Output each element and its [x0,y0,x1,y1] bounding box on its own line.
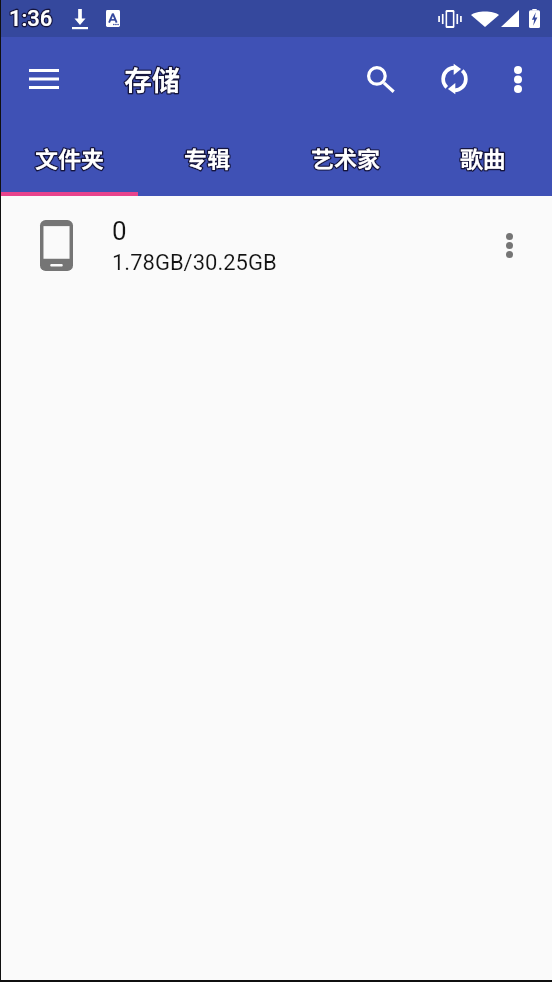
staticText: 0 [112,216,127,246]
button[interactable]: 艺术家 [276,122,414,196]
button[interactable]: 歌曲 [414,122,552,196]
staticText: 文件夹 [35,141,104,174]
staticText: 歌曲 [460,141,506,174]
button[interactable]: 文件夹 [0,122,138,196]
button[interactable]: 专辑 [138,122,276,196]
staticText: 存储 [124,59,181,100]
staticText: 1:36 [9,6,53,32]
button[interactable]: Navigation menu [15,50,73,108]
button[interactable]: Search [353,50,409,108]
staticText: 专辑 [184,141,230,174]
staticText: 艺术家 [311,141,380,174]
button[interactable]: More options [494,50,542,108]
staticText: 艺术家 [311,141,380,174]
staticText: 歌曲 [460,141,506,174]
staticText: 文件夹 [35,141,104,174]
staticText: 1.78GB/30.25GB [112,250,277,276]
button[interactable]: 0 [0,196,552,292]
button[interactable]: Refresh [427,48,482,110]
staticText: 1:36 [9,6,53,32]
button[interactable]: Item options [487,216,531,274]
staticText: 专辑 [184,141,230,174]
staticText: 存储 [124,59,181,100]
